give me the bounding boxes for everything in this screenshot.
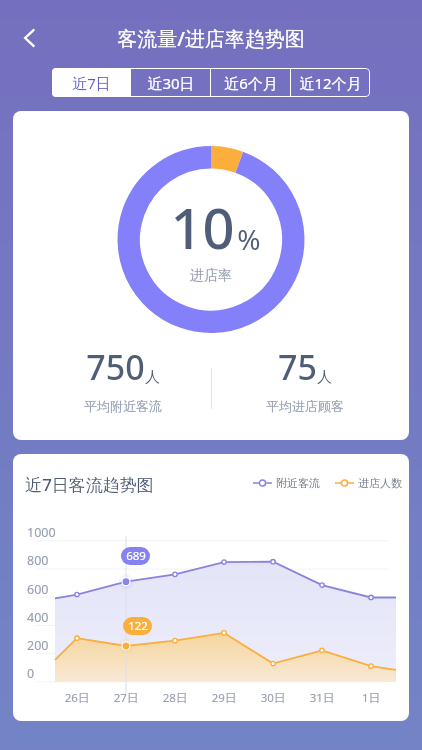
staticText: 75	[278, 344, 317, 390]
staticText: 27日	[106, 690, 146, 706]
staticText: 近7日	[72, 73, 111, 93]
staticText: 30日	[253, 690, 293, 706]
staticText: 200	[27, 637, 49, 654]
button[interactable]: 近7日	[52, 68, 130, 97]
staticText: 689	[126, 548, 146, 564]
button[interactable]: 进店人数	[335, 476, 402, 490]
staticText: 800	[27, 552, 49, 569]
staticText: 平均进店顾客	[266, 398, 344, 414]
staticText: 附近客流	[276, 476, 320, 490]
staticText: 29日	[204, 690, 244, 706]
button[interactable]: 近30日	[131, 68, 210, 97]
staticText: 近30日	[147, 73, 195, 93]
staticText: 400	[27, 609, 49, 626]
staticText: 1000	[27, 524, 56, 541]
staticText: 人	[145, 368, 160, 387]
staticText: 122	[128, 618, 148, 634]
staticText: 近12个月	[299, 73, 362, 93]
staticText: 750	[86, 344, 145, 390]
staticText: 26日	[57, 690, 97, 706]
staticText: 0	[27, 665, 35, 682]
staticText: 进店人数	[358, 476, 402, 490]
staticText: 31日	[302, 690, 342, 706]
staticText: 近7日客流趋势图	[25, 473, 154, 496]
staticText: %	[237, 220, 261, 258]
staticText: 28日	[155, 690, 195, 706]
button[interactable]: Back	[8, 16, 52, 60]
staticText: 客流量/进店率趋势图	[0, 25, 422, 52]
staticText: 1日	[351, 690, 391, 706]
button[interactable]: 附近客流	[253, 476, 320, 490]
staticText: 近6个月	[224, 73, 278, 93]
staticText: 进店率	[13, 267, 409, 285]
button[interactable]: 近6个月	[211, 68, 290, 97]
staticText: 10	[170, 189, 235, 265]
staticText: 人	[317, 368, 332, 387]
button[interactable]: 近12个月	[291, 68, 370, 97]
staticText: 平均附近客流	[84, 398, 162, 414]
staticText: 600	[27, 581, 49, 598]
